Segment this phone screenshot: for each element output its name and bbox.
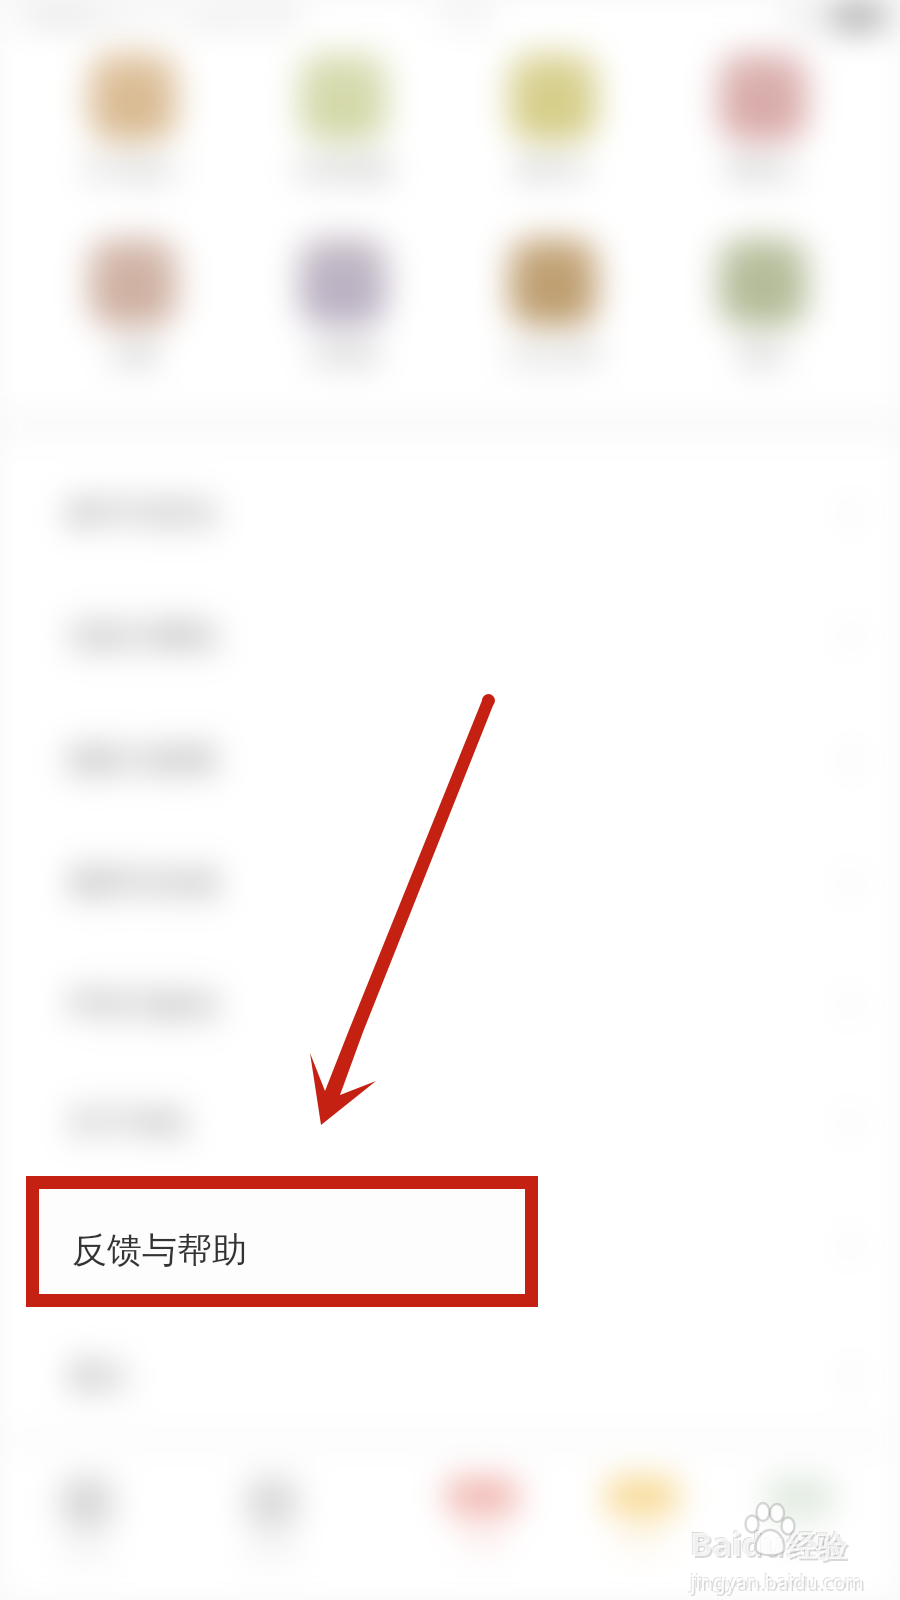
button[interactable]: 消息 (422, 1478, 542, 1552)
staticText: 马蜂窝 (307, 340, 379, 370)
staticText: jingyan.baidu.com (690, 1568, 864, 1595)
button[interactable]: 隐私与权限 (0, 699, 900, 821)
staticText: jingyan.baidu.com (689, 1567, 863, 1594)
staticText: 消息 (458, 1522, 506, 1552)
staticText: 网易云 (727, 155, 799, 185)
button[interactable]: Open 微信 (673, 238, 853, 370)
staticText: jingyan.baidu.com (692, 1570, 866, 1597)
staticText: 爱奇艺 (517, 155, 589, 185)
staticText: 讯飞输入 (85, 155, 181, 185)
staticText: 通用与存储 (68, 864, 218, 902)
staticText: 关于本机 (68, 1104, 188, 1142)
button[interactable]: 通用与存储 (0, 822, 900, 944)
button[interactable]: Open 大众点评 (463, 238, 643, 370)
staticText: 声音与振动 (68, 986, 218, 1024)
button[interactable]: 消息与通知 (0, 575, 900, 697)
button[interactable]: 购物 (582, 1478, 702, 1552)
button[interactable]: 首页 (27, 1478, 147, 1566)
button[interactable]: 反馈与帮助 (0, 1185, 900, 1307)
staticText: 退出 (68, 1357, 128, 1395)
staticText: 我的 (776, 1524, 824, 1554)
staticText: Baidu (689, 1520, 783, 1565)
staticText: 反馈与帮助 (68, 1227, 218, 1265)
button[interactable]: Open 网易云 (673, 53, 853, 185)
button[interactable]: Open 马蜂窝 (253, 238, 433, 370)
staticText: 豆瓣 (109, 340, 157, 370)
staticText: 经验 (786, 1527, 846, 1565)
staticText: 账号与安全 (68, 494, 218, 532)
staticText: Baidu (690, 1521, 784, 1566)
staticText: 反馈与帮助 (72, 1228, 247, 1272)
button[interactable]: 我的 (740, 1478, 860, 1554)
staticText: 微信 (739, 340, 787, 370)
button[interactable]: 关于本机 (0, 1062, 900, 1184)
button[interactable]: 反馈与帮助 (39, 1189, 525, 1294)
staticText: 经验 (787, 1528, 847, 1566)
button[interactable]: 发现 (212, 1478, 332, 1566)
button[interactable]: Open 百度地图 (253, 53, 433, 185)
staticText: Baidu (692, 1523, 786, 1568)
staticText: 隐私与权限 (68, 741, 218, 779)
button[interactable]: Open 讯飞输入 (43, 53, 223, 185)
button[interactable]: 声音与振动 (0, 944, 900, 1066)
staticText: 经验 (789, 1530, 849, 1568)
staticText: 4G▴ (785, 3, 822, 30)
button[interactable]: 账号与安全 (0, 452, 900, 574)
staticText: 百度地图 (295, 155, 391, 185)
staticText: 购物 (618, 1522, 666, 1552)
staticText: 消息与通知 (68, 617, 218, 655)
other: Arrow pointing at Feedback and help (0, 0, 900, 1600)
staticText: 大众点评 (505, 340, 601, 370)
button[interactable]: Open 豆瓣 (43, 238, 223, 370)
button[interactable]: Open 爱奇艺 (463, 53, 643, 185)
